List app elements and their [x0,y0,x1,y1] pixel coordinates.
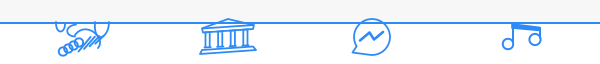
button[interactable]: Music [502,23,546,50]
button[interactable]: Banking [200,23,256,56]
button[interactable]: Messages [350,22,392,53]
button[interactable]: Partnerships [55,23,111,56]
